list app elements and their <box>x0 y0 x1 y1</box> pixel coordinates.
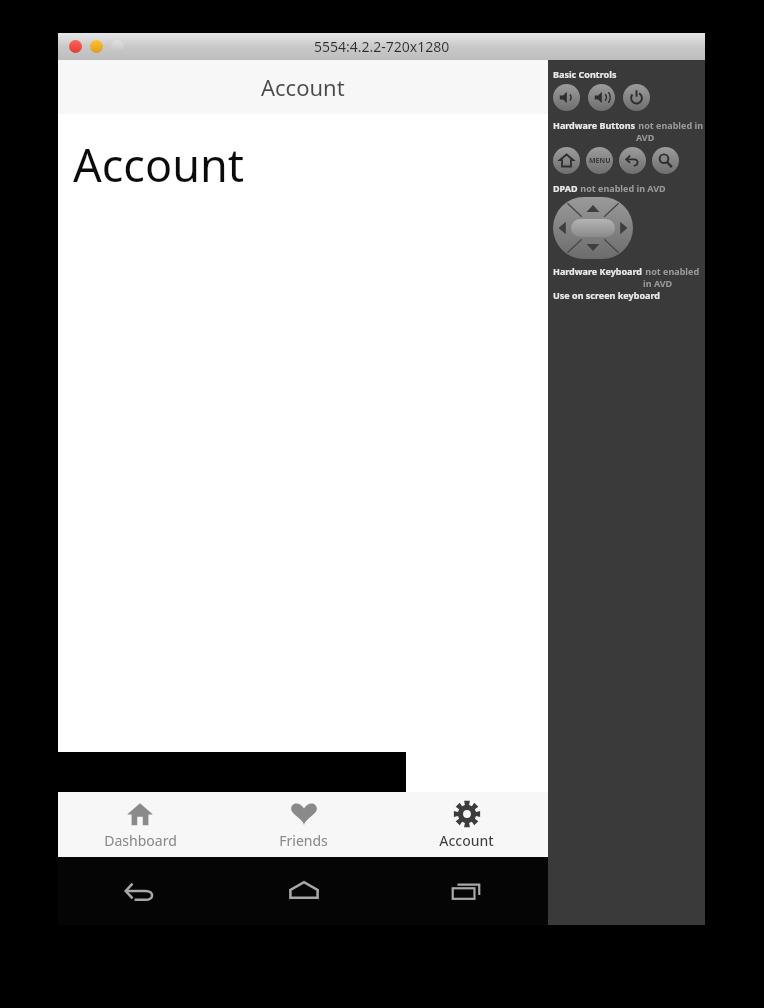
staticText: Account <box>439 831 494 850</box>
button[interactable]: Dashboard <box>58 792 222 857</box>
staticText: Basic Controls <box>553 68 617 80</box>
staticText: MENU <box>589 156 611 166</box>
button[interactable]: Menu <box>586 147 613 174</box>
staticText: Hardware Buttons <box>553 119 636 131</box>
button[interactable]: Recents <box>385 857 548 925</box>
staticText: Account <box>261 72 345 102</box>
button[interactable]: Select <box>571 219 615 237</box>
button[interactable]: Back <box>619 147 646 174</box>
button[interactable]: Home <box>222 857 385 925</box>
button[interactable]: Back <box>58 857 222 925</box>
button[interactable]: DPAD <box>553 197 633 259</box>
button[interactable]: Power <box>623 84 650 111</box>
staticText: Dashboard <box>104 831 177 850</box>
staticText: Use on screen keyboard <box>553 289 660 301</box>
button[interactable]: Search <box>652 147 679 174</box>
staticText: not enabled in AVD <box>578 182 666 194</box>
staticText: not enabled in AVD <box>643 265 705 289</box>
button[interactable]: Volume down <box>553 84 580 111</box>
staticText: 5554:4.2.2-720x1280 <box>314 37 450 56</box>
button[interactable]: Volume up <box>588 84 615 111</box>
button[interactable]: Account <box>385 792 548 857</box>
staticText: DPAD <box>553 182 578 194</box>
staticText: Account <box>73 134 245 195</box>
staticText: not enabled in AVD <box>636 119 705 143</box>
button[interactable] <box>90 40 103 53</box>
button[interactable] <box>111 40 124 53</box>
button[interactable]: Home <box>553 147 580 174</box>
button[interactable] <box>69 40 82 53</box>
button[interactable]: Friends <box>222 792 385 857</box>
staticText: Friends <box>279 831 328 850</box>
staticText: Hardware Keyboard <box>553 265 643 277</box>
